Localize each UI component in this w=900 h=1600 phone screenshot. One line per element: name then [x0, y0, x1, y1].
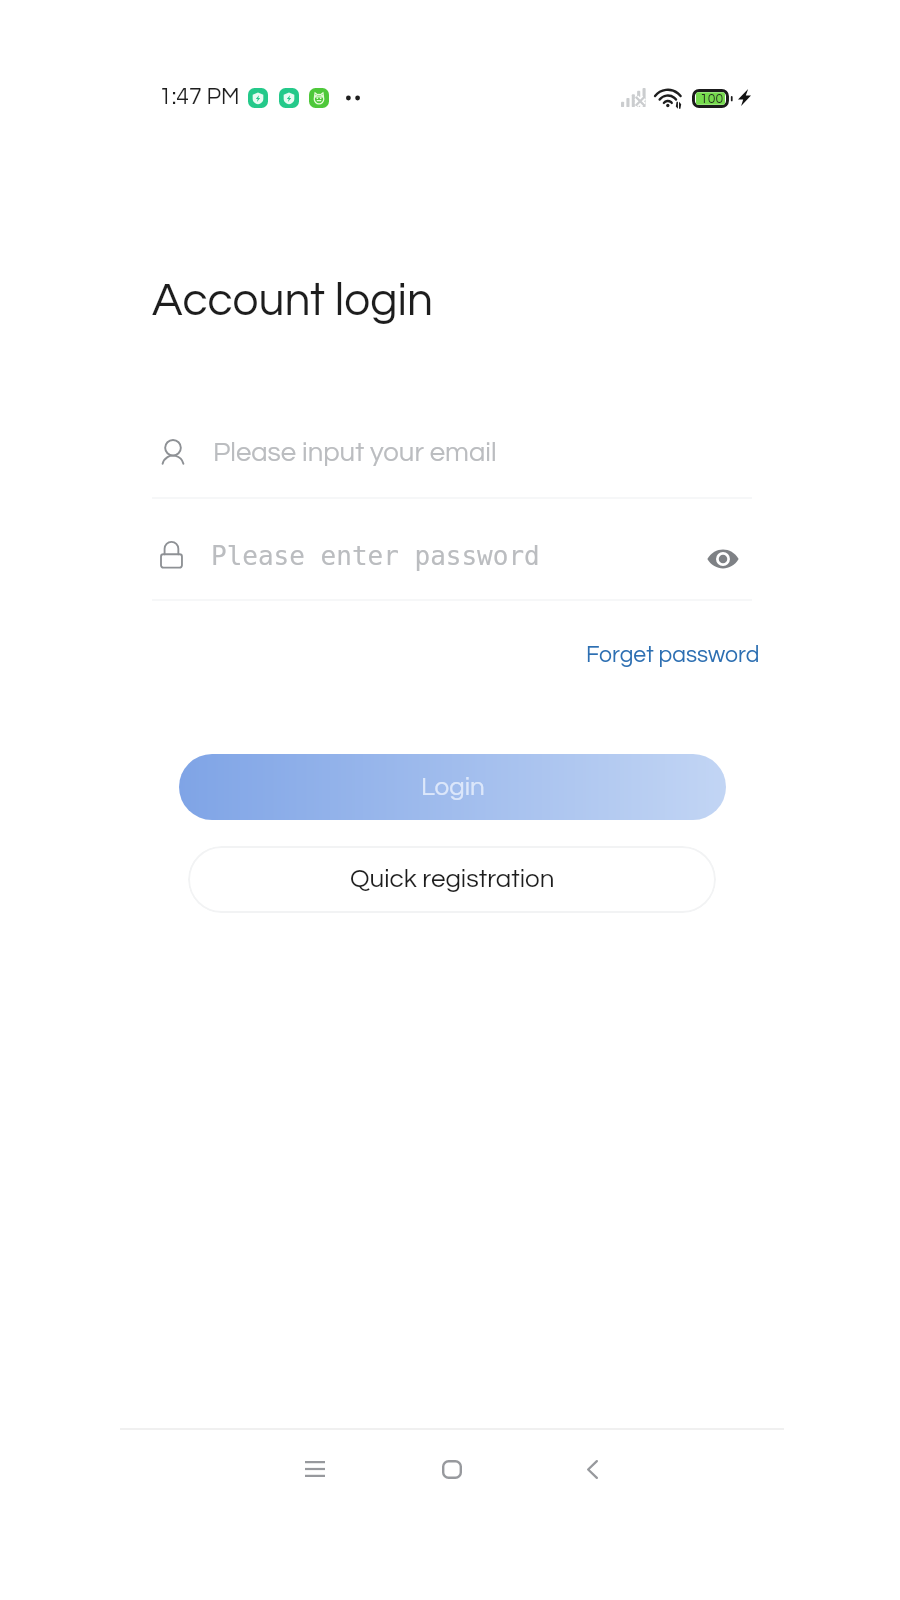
- staticText: Login: [421, 774, 485, 801]
- staticText: Forget password: [586, 643, 760, 667]
- button[interactable]: Forget password: [586, 643, 760, 667]
- button[interactable]: Please input your email: [152, 425, 752, 497]
- button[interactable]: Recent apps: [267, 1421, 363, 1517]
- button[interactable]: Please enter password: [152, 527, 682, 599]
- button[interactable]: Home: [404, 1421, 500, 1517]
- button[interactable]: Quick registration: [188, 846, 716, 913]
- staticText: 1:47 PM: [159, 85, 240, 109]
- staticText: Quick registration: [350, 866, 555, 893]
- button[interactable]: Login: [179, 754, 726, 820]
- button[interactable]: Show password: [691, 527, 755, 591]
- button[interactable]: Back: [544, 1421, 640, 1517]
- staticText: 100: [700, 92, 724, 106]
- staticText: Account login: [152, 277, 433, 324]
- staticText: Please enter password: [211, 541, 540, 571]
- staticText: Please input your email: [213, 438, 497, 466]
